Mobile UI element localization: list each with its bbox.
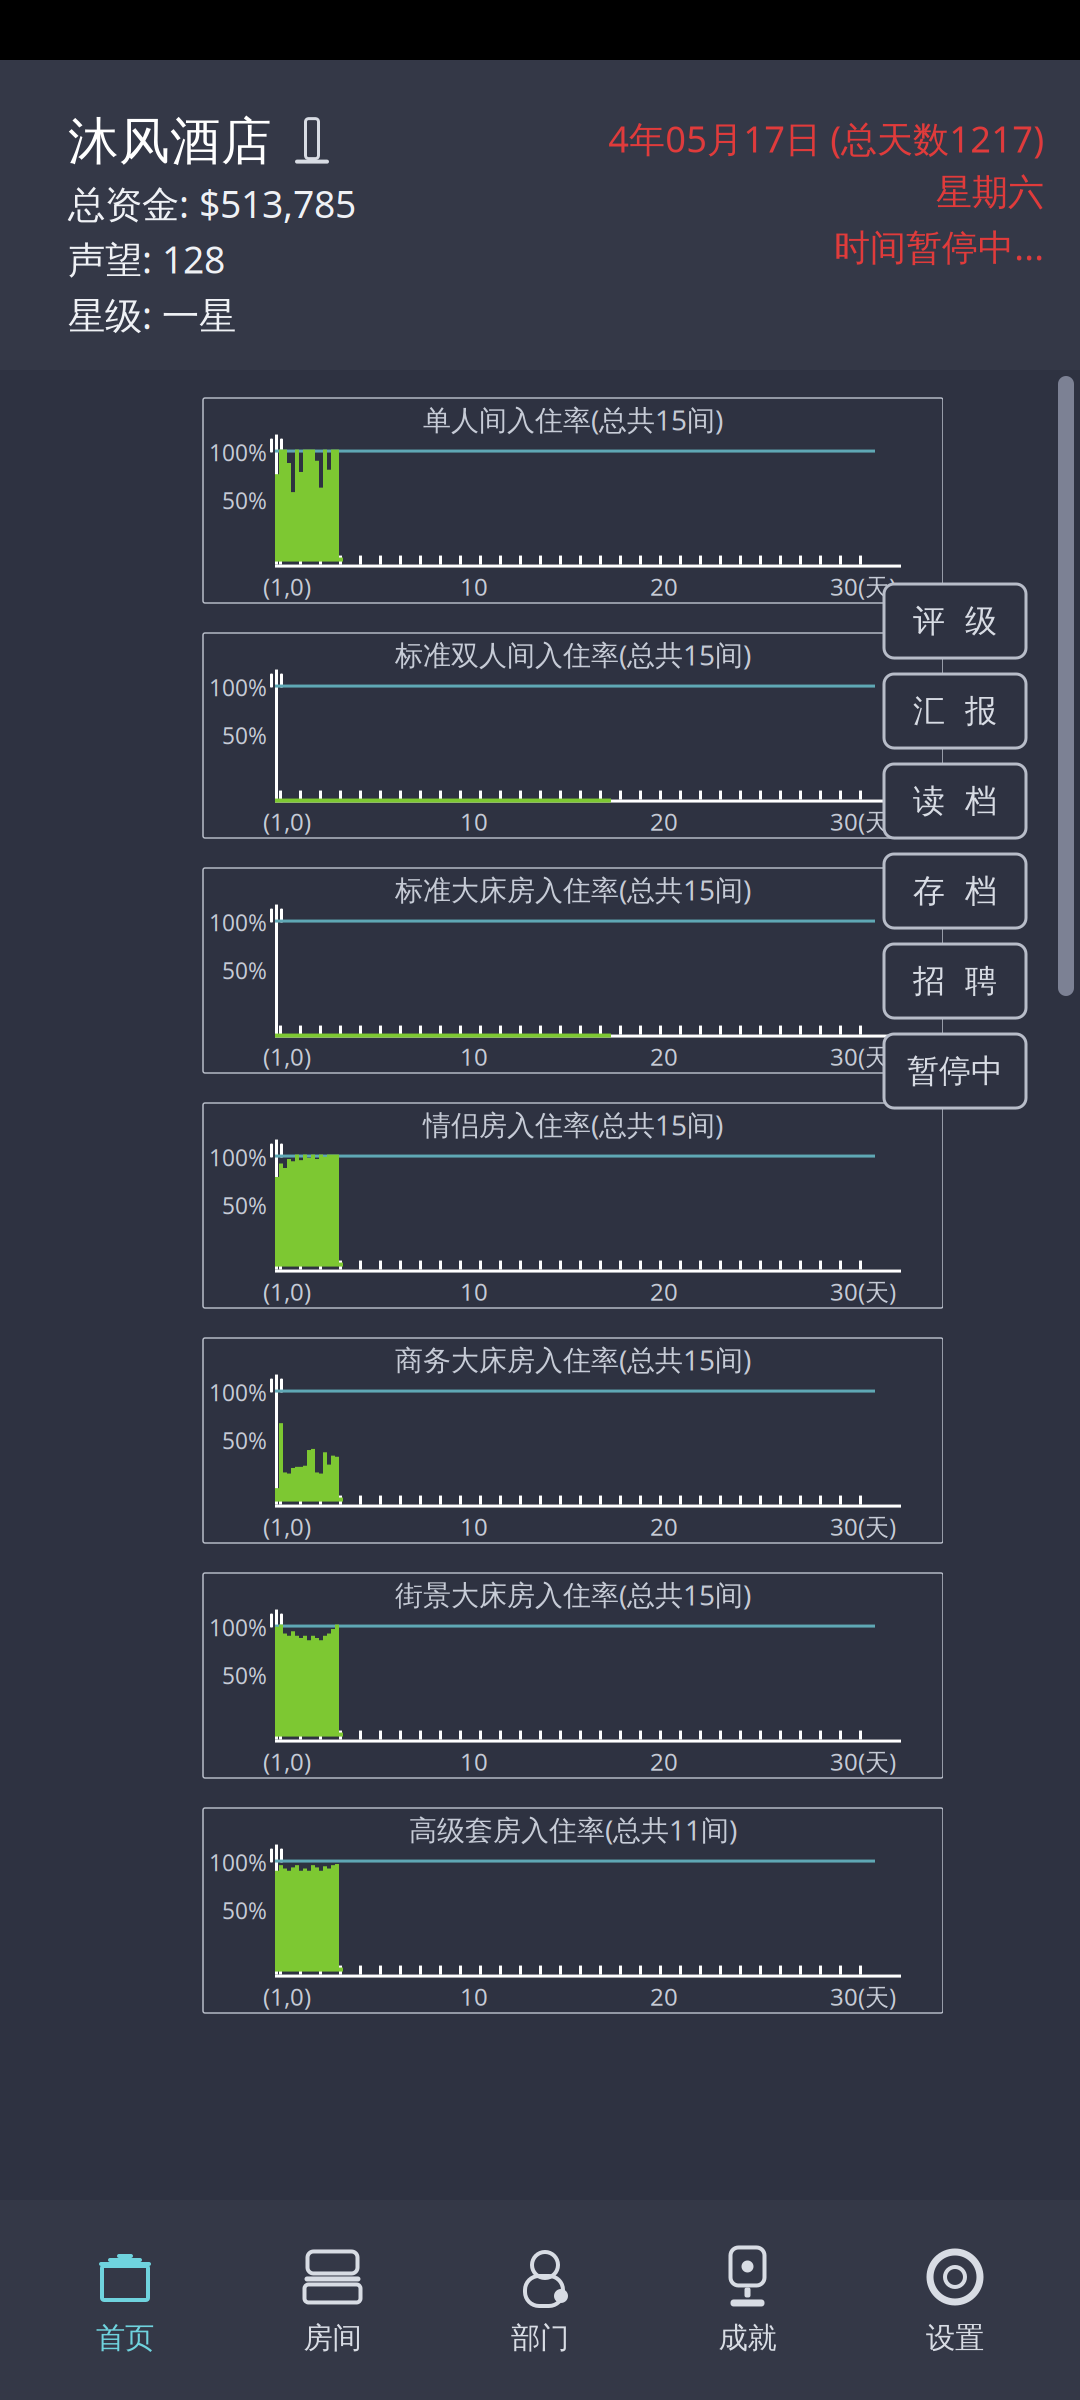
- button[interactable]: 部门: [465, 2234, 615, 2366]
- staticText: 声望: 128: [68, 234, 225, 284]
- button[interactable]: 暂停中: [884, 1034, 1026, 1108]
- button[interactable]: 存 档: [884, 854, 1026, 928]
- staticText: 50%: [222, 1660, 267, 1691]
- staticText: 50%: [222, 485, 267, 516]
- staticText: 30(天): [830, 1746, 896, 1777]
- staticText: 100%: [209, 1847, 267, 1878]
- staticText: 10: [460, 571, 488, 602]
- staticText: 20: [650, 1041, 678, 1072]
- staticText: 50%: [222, 1895, 267, 1926]
- button[interactable]: 招 聘: [884, 944, 1026, 1018]
- staticText: 50%: [222, 955, 267, 986]
- staticText: 20: [650, 806, 678, 837]
- staticText: 100%: [209, 1142, 267, 1173]
- staticText: 星级: 一星: [68, 290, 236, 339]
- staticText: 10: [460, 1041, 488, 1072]
- staticText: 10: [460, 806, 488, 837]
- staticText: 总资金: $513,785: [68, 179, 356, 228]
- staticText: 100%: [209, 437, 267, 468]
- staticText: 50%: [222, 720, 267, 751]
- staticText: 商务大床房入住率(总共15间): [395, 1341, 751, 1378]
- staticText: 星期六: [936, 170, 1044, 214]
- staticText: (1,0): [263, 1981, 311, 2012]
- staticText: (1,0): [263, 1276, 311, 1307]
- staticText: 50%: [222, 1425, 267, 1456]
- staticText: 标准大床房入住率(总共15间): [395, 871, 751, 908]
- staticText: 4年05月17日 (总天数1217): [608, 114, 1044, 162]
- staticText: 汇 报: [913, 691, 997, 731]
- button[interactable]: 汇 报: [884, 674, 1026, 748]
- staticText: 20: [650, 1511, 678, 1542]
- button[interactable]: 读 档: [884, 764, 1026, 838]
- staticText: 30(天): [830, 1276, 896, 1307]
- staticText: (1,0): [263, 1041, 311, 1072]
- staticText: 20: [650, 1746, 678, 1777]
- staticText: 10: [460, 1746, 488, 1777]
- staticText: (1,0): [263, 571, 311, 602]
- staticText: 评 级: [913, 601, 997, 641]
- staticText: (1,0): [263, 806, 311, 837]
- staticText: 街景大床房入住率(总共15间): [395, 1576, 751, 1613]
- staticText: (1,0): [263, 1511, 311, 1542]
- staticText: 房间: [303, 2320, 361, 2356]
- staticText: 读 档: [913, 781, 997, 821]
- staticText: 沐风酒店: [68, 110, 272, 173]
- staticText: 30(天): [830, 571, 896, 602]
- staticText: 部门: [511, 2320, 569, 2356]
- staticText: 暂停中: [907, 1051, 1003, 1091]
- staticText: 30(天): [830, 1981, 896, 2012]
- staticText: 设置: [926, 2320, 984, 2356]
- staticText: 100%: [209, 1377, 267, 1408]
- staticText: 10: [460, 1511, 488, 1542]
- staticText: 20: [650, 1981, 678, 2012]
- staticText: 20: [650, 1276, 678, 1307]
- staticText: 30(天): [830, 1041, 896, 1072]
- staticText: 存 档: [913, 871, 997, 911]
- staticText: 30(天): [830, 1511, 896, 1542]
- staticText: 首页: [96, 2320, 154, 2356]
- button[interactable]: 首页: [50, 2234, 200, 2366]
- staticText: 100%: [209, 672, 267, 703]
- button[interactable]: 成就: [672, 2234, 822, 2366]
- staticText: 20: [650, 571, 678, 602]
- staticText: 10: [460, 1276, 488, 1307]
- staticText: 成就: [718, 2320, 776, 2356]
- staticText: 招 聘: [913, 961, 997, 1001]
- staticText: 单人间入住率(总共15间): [423, 401, 723, 438]
- staticText: (1,0): [263, 1746, 311, 1777]
- button[interactable]: 重命名酒店: [288, 116, 336, 168]
- staticText: 情侣房入住率(总共15间): [423, 1106, 723, 1143]
- staticText: 标准双人间入住率(总共15间): [395, 636, 751, 673]
- staticText: 100%: [209, 907, 267, 938]
- staticText: 100%: [209, 1612, 267, 1643]
- staticText: 时间暂停中...: [834, 222, 1044, 270]
- button[interactable]: 设置: [880, 2234, 1030, 2366]
- staticText: 30(天): [830, 806, 896, 837]
- button[interactable]: 房间: [257, 2234, 407, 2366]
- button[interactable]: 评 级: [884, 584, 1026, 658]
- staticText: 50%: [222, 1190, 267, 1221]
- staticText: 10: [460, 1981, 488, 2012]
- staticText: 高级套房入住率(总共11间): [409, 1811, 737, 1848]
